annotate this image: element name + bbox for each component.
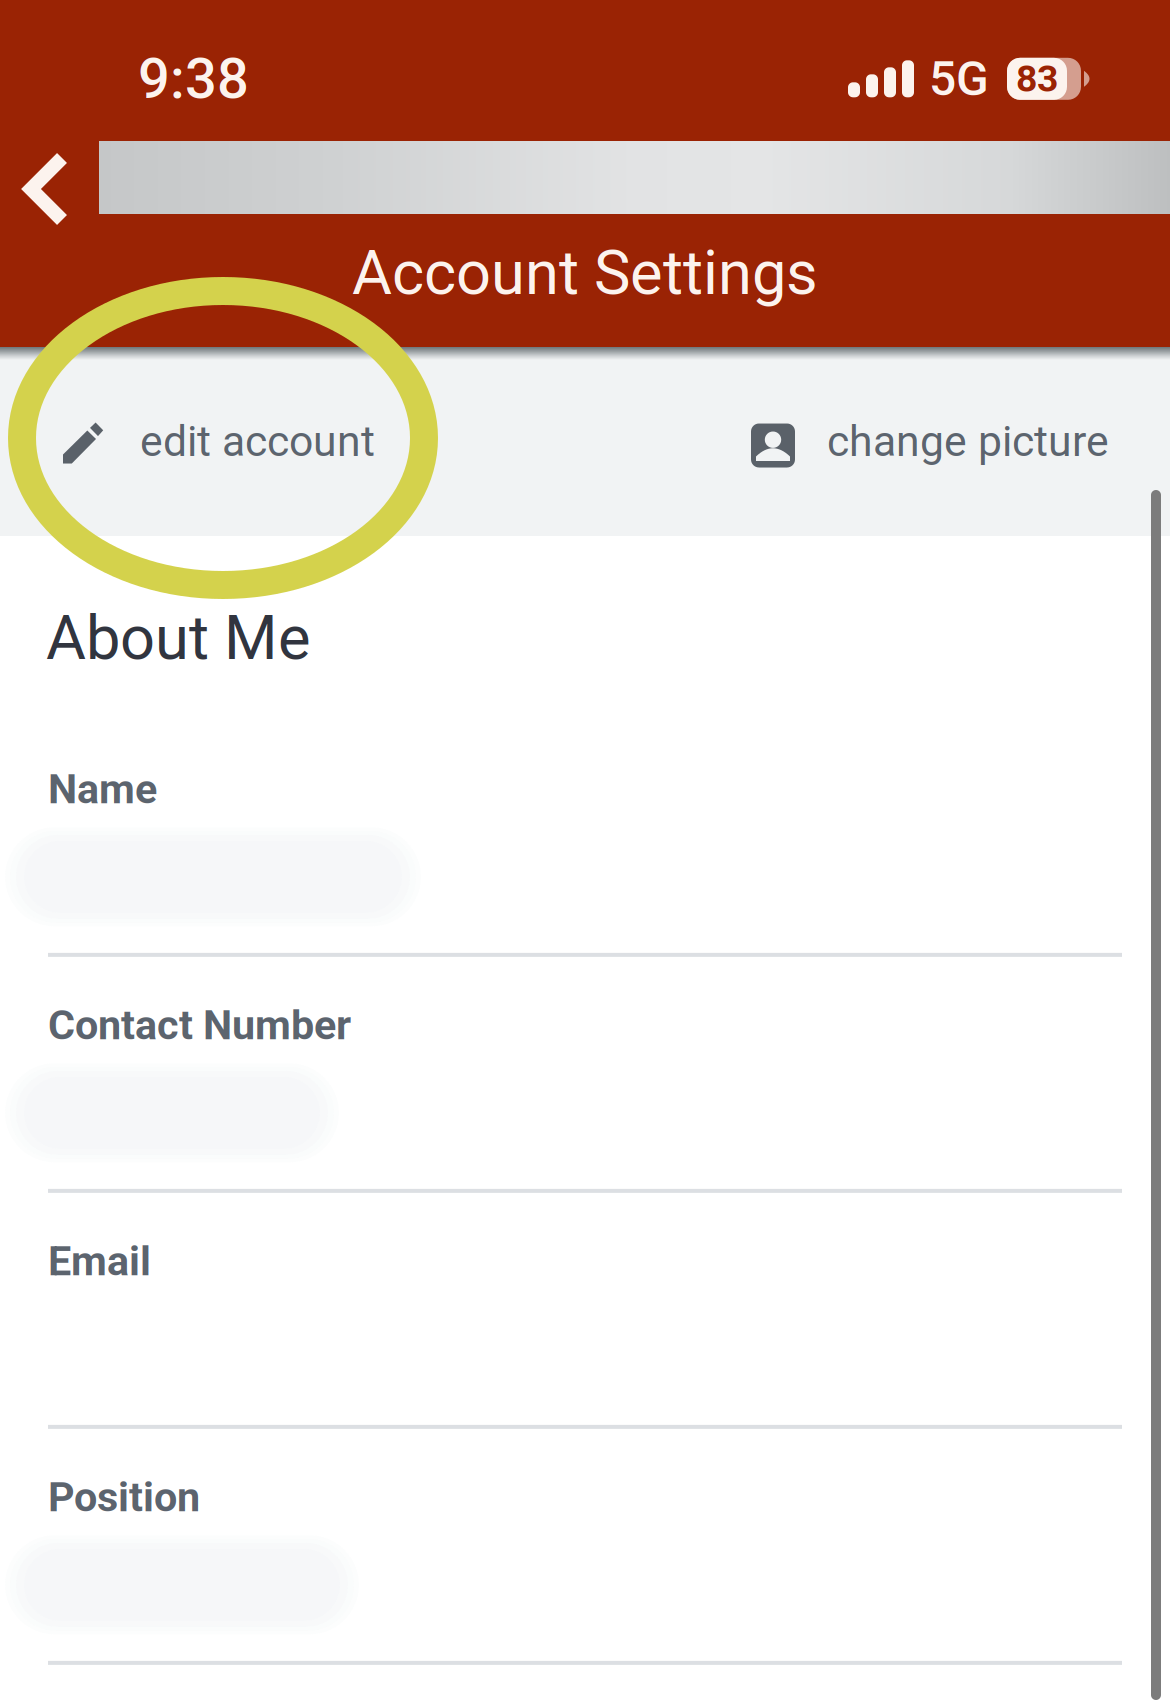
button[interactable]: change picture (745, 347, 1170, 536)
staticText: Contact Number (48, 1001, 351, 1049)
button[interactable]: edit account (0, 347, 435, 536)
staticText: About Me (46, 602, 311, 674)
staticText: 9:38 (138, 46, 249, 112)
staticText: edit account (140, 416, 375, 466)
staticText: Position (48, 1473, 200, 1521)
staticText: 5G (929, 51, 989, 107)
staticText: change picture (827, 416, 1109, 466)
staticText: Email (48, 1237, 151, 1285)
button[interactable]: Back (0, 151, 69, 227)
staticText: 83 (1016, 57, 1058, 101)
staticText: Name (48, 765, 157, 813)
staticText: Account Settings (352, 237, 818, 309)
